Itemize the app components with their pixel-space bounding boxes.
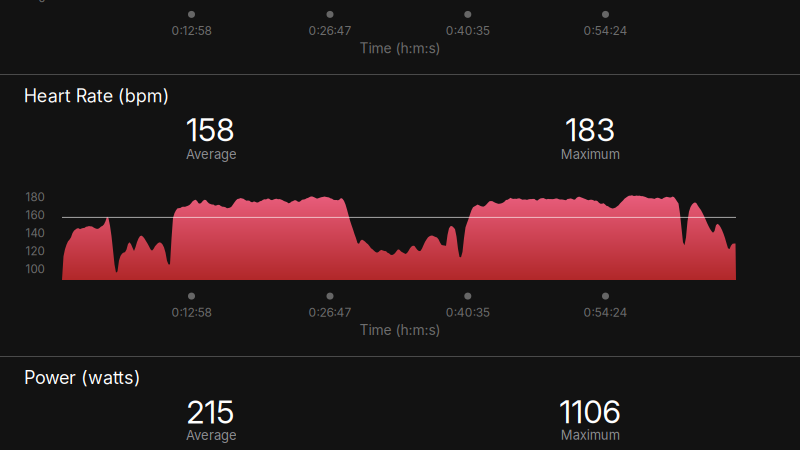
staticText: Time (h:m:s) (359, 321, 440, 338)
staticText: Average (186, 146, 237, 162)
staticText: 158 (186, 111, 235, 149)
staticText: 100 (25, 262, 44, 276)
staticText: 183 (565, 111, 615, 149)
staticText: Average (186, 427, 237, 443)
staticText: Maximum (561, 427, 620, 443)
staticText: 140 (25, 226, 44, 240)
staticText: Time (h:m:s) (359, 40, 440, 57)
staticText: Maximum (561, 146, 620, 162)
staticText: 0:26:47 (308, 305, 351, 320)
staticText: 160 (25, 208, 44, 222)
staticText: Power (watts) (24, 366, 141, 388)
staticText: 0:54:24 (583, 23, 627, 38)
staticText: 0:12:58 (171, 23, 211, 38)
staticText: Heart Rate (bpm) (24, 85, 170, 106)
staticText: 120 (25, 244, 44, 258)
staticText: 1106 (559, 393, 621, 431)
staticText: 0 (38, 0, 45, 5)
staticText: 0:40:35 (446, 305, 490, 320)
staticText: 0:54:24 (583, 305, 627, 320)
staticText: 180 (25, 190, 44, 204)
staticText: 0:40:35 (446, 23, 490, 38)
staticText: 0:12:58 (171, 305, 211, 320)
staticText: 0:26:47 (308, 23, 351, 38)
staticText: 215 (186, 393, 234, 431)
